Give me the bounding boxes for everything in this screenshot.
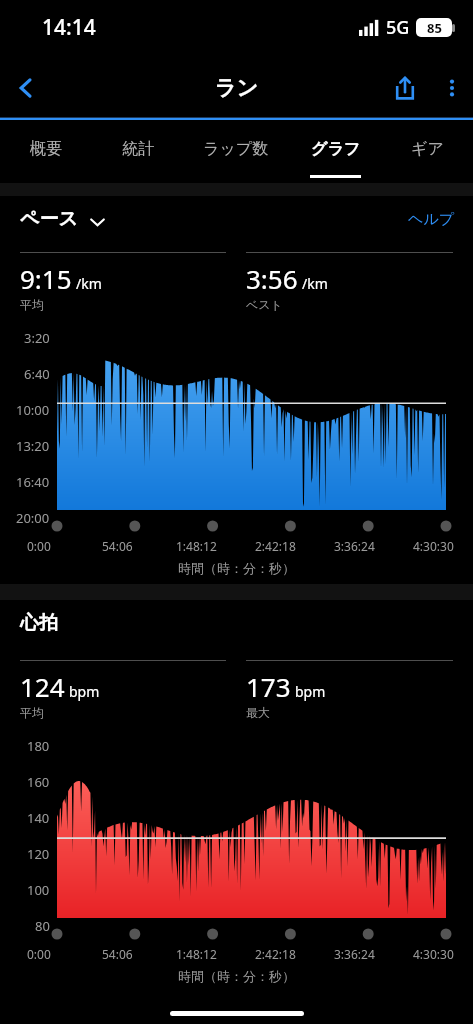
staticText: 54:06 — [102, 538, 133, 554]
button[interactable]: 統計 — [91, 120, 183, 183]
staticText: 平均 — [20, 705, 44, 720]
staticText: グラフ — [311, 139, 361, 159]
staticText: /km — [76, 274, 102, 293]
staticText: 1:48:12 — [176, 946, 217, 962]
staticText: 平均 — [20, 297, 44, 312]
staticText: 100 — [27, 881, 50, 899]
staticText: ペース — [20, 207, 78, 231]
staticText: 3:20 — [24, 329, 50, 347]
staticText: 160 — [27, 773, 50, 791]
button[interactable]: Share — [379, 62, 431, 114]
staticText: 80 — [35, 917, 50, 935]
staticText: 4:30:30 — [413, 946, 454, 962]
staticText: 13:20 — [16, 437, 50, 455]
staticText: 2:42:18 — [255, 946, 296, 962]
staticText: 0:00 — [27, 538, 51, 554]
button[interactable]: ギア — [381, 120, 473, 183]
staticText: ヘルプ — [408, 210, 455, 229]
staticText: /km — [302, 274, 328, 293]
staticText: 時間（時：分：秒） — [178, 560, 295, 576]
staticText: 124 — [20, 669, 65, 704]
staticText: 20:00 — [16, 509, 50, 527]
staticText: 時間（時：分：秒） — [178, 968, 295, 984]
staticText: 54:06 — [102, 946, 133, 962]
staticText: 3:36:24 — [334, 538, 375, 554]
staticText: 概要 — [30, 139, 62, 159]
staticText: 85 — [427, 19, 442, 37]
button[interactable]: ラップ数 — [183, 120, 289, 183]
staticText: 5G — [386, 15, 410, 40]
button[interactable]: ペース — [20, 207, 105, 231]
staticText: bpm — [295, 682, 326, 701]
staticText: 6:40 — [24, 365, 50, 383]
staticText: 最大 — [246, 705, 270, 720]
staticText: 14:14 — [42, 13, 96, 42]
staticText: 120 — [27, 845, 50, 863]
staticText: 4:30:30 — [413, 538, 454, 554]
staticText: bpm — [69, 682, 100, 701]
staticText: 1:48:12 — [176, 538, 217, 554]
button[interactable]: グラフ — [289, 120, 381, 183]
staticText: 173 — [246, 669, 291, 704]
button[interactable]: More options — [431, 67, 473, 109]
staticText: 2:42:18 — [255, 538, 296, 554]
staticText: 0:00 — [27, 946, 51, 962]
button[interactable]: Back — [0, 62, 52, 114]
staticText: 16:40 — [16, 473, 50, 491]
staticText: 140 — [27, 809, 50, 827]
staticText: 3:56 — [246, 261, 298, 296]
staticText: 10:00 — [16, 401, 50, 419]
staticText: ベスト — [246, 297, 283, 312]
staticText: ラン — [215, 75, 258, 101]
staticText: ラップ数 — [203, 139, 269, 159]
staticText: 3:36:24 — [334, 946, 375, 962]
button[interactable]: ヘルプ — [408, 210, 455, 229]
staticText: 9:15 — [20, 261, 72, 296]
staticText: 統計 — [122, 139, 154, 159]
staticText: 心拍 — [20, 611, 58, 635]
staticText: ギア — [411, 139, 444, 159]
button[interactable]: 心拍 — [20, 611, 58, 635]
button[interactable]: 概要 — [0, 120, 91, 183]
staticText: 180 — [27, 737, 50, 755]
